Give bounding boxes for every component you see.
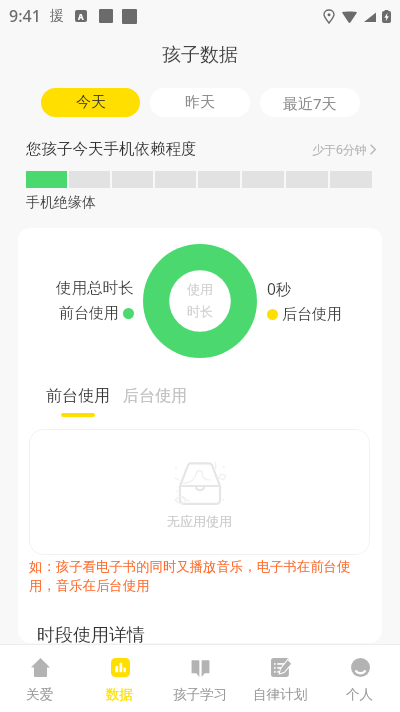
staticText: 使用 xyxy=(187,281,213,297)
staticText: 昨天 xyxy=(185,93,215,112)
staticText: 0秒 xyxy=(267,278,292,299)
button[interactable]: Profile xyxy=(320,655,400,703)
staticText: 时段使用详情 xyxy=(37,624,145,643)
staticText: 9:41 xyxy=(9,5,41,27)
staticText: 前台使用 xyxy=(59,304,119,323)
staticText: A xyxy=(78,11,84,22)
staticText: 如：孩子看电子书的同时又播放音乐，电子书在前台使用，音乐在后台使用 xyxy=(29,558,361,594)
staticText: 手机绝缘体 xyxy=(26,194,96,212)
staticText: 无应用使用 xyxy=(167,513,232,529)
staticText: 前台使用 xyxy=(46,386,110,406)
button[interactable]: 前台使用 xyxy=(46,386,110,417)
button[interactable]: 您孩子今天手机依赖程度 xyxy=(26,139,376,159)
staticText: 自律计划 xyxy=(253,686,308,703)
button[interactable]: Data xyxy=(80,655,160,703)
staticText: 数据 xyxy=(106,686,134,703)
button[interactable]: Care xyxy=(0,655,80,703)
button[interactable]: 今天 xyxy=(41,88,140,117)
staticText: 孩子数据 xyxy=(162,43,238,67)
staticText: 个人 xyxy=(346,686,374,703)
staticText: 使用总时长 xyxy=(56,278,134,298)
staticText: 后台使用 xyxy=(123,386,187,406)
button[interactable]: Study xyxy=(160,655,240,703)
staticText: 最近7天 xyxy=(283,93,337,113)
staticText: 孩子学习 xyxy=(173,686,228,703)
button[interactable]: 昨天 xyxy=(150,88,250,117)
staticText: 您孩子今天手机依赖程度 xyxy=(26,139,197,159)
staticText: 少于6分钟 xyxy=(312,141,367,157)
staticText: 援 xyxy=(50,7,64,25)
staticText: 后台使用 xyxy=(282,305,342,324)
button[interactable]: Plan xyxy=(240,655,320,703)
button[interactable]: 最近7天 xyxy=(260,88,360,117)
button[interactable]: 后台使用 xyxy=(123,386,187,417)
staticText: 今天 xyxy=(76,93,106,112)
staticText: 关爱 xyxy=(26,686,54,703)
staticText: 时长 xyxy=(187,303,213,319)
